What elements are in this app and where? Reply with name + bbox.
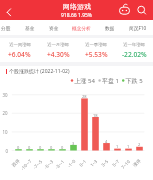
staticText: +5.53% [85, 50, 108, 59]
staticText: 基金 [25, 25, 35, 31]
button[interactable]: 基金 [25, 20, 35, 35]
staticText: +6.04% [8, 50, 31, 59]
staticText: +4.30% [47, 50, 70, 59]
button[interactable]: 资金 [49, 20, 59, 35]
button[interactable]: 分股 [1, 20, 11, 35]
staticText: 资金 [49, 25, 59, 31]
button[interactable]: 近一季涨幅 [77, 42, 115, 59]
staticText: 918.66 1.95% [61, 12, 93, 19]
button[interactable]: 近一月涨幅 [39, 42, 77, 59]
button[interactable]: Search [135, 0, 149, 20]
staticText: 近一月涨幅 [47, 42, 69, 48]
staticText: 概念分析 [72, 25, 91, 31]
staticText: 简况F10 [129, 25, 147, 31]
staticText: 网络游戏 [63, 2, 91, 11]
button[interactable]: 数据 [105, 20, 115, 35]
staticText: 近一年涨幅 [123, 42, 145, 48]
staticText: 分股 [1, 25, 11, 31]
button[interactable]: 近一周涨幅 [0, 42, 39, 59]
staticText: 近一季涨幅 [85, 42, 107, 48]
button[interactable]: 概念分析 [72, 20, 91, 35]
button[interactable]: Back [0, 1, 18, 19]
button[interactable]: 简况F10 [129, 20, 147, 35]
staticText: 数据 [105, 25, 115, 31]
button[interactable]: 近一年涨幅 [115, 42, 153, 59]
staticText: 近一周涨幅 [9, 42, 31, 48]
staticText: -22.02% [122, 50, 147, 59]
button[interactable]: AI assistant [118, 0, 131, 20]
staticText: 个股涨跌统计 (2022-11-02) [9, 68, 70, 75]
